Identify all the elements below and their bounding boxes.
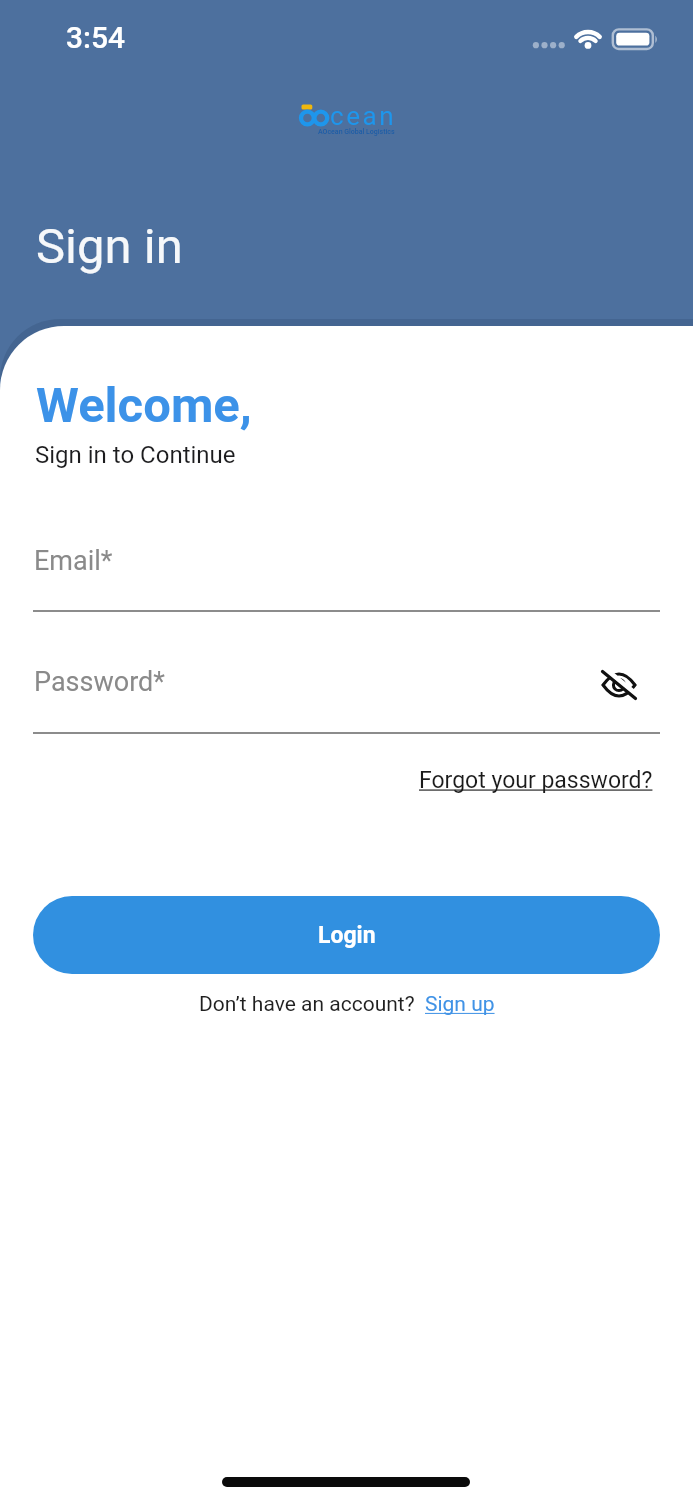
button[interactable]: Login <box>33 896 660 974</box>
staticText: Sign in to Continue <box>35 441 236 469</box>
button[interactable]: Password* <box>33 648 660 734</box>
staticText: Password* <box>34 666 165 698</box>
staticText: Sign up <box>425 992 495 1017</box>
button[interactable] <box>599 667 639 703</box>
staticText: 3:54 <box>66 20 126 55</box>
button[interactable]: Forgot your password? <box>419 767 653 794</box>
staticText: AOcean Global Logistics <box>318 128 395 136</box>
staticText: Forgot your password? <box>419 767 653 794</box>
staticText: Email* <box>34 545 113 577</box>
staticText: cean <box>330 101 397 131</box>
staticText: Login <box>318 922 376 949</box>
staticText: Sign in <box>36 218 183 275</box>
button[interactable]: Sign up <box>425 992 495 1017</box>
staticText: Welcome, <box>36 377 252 434</box>
staticText: Don’t have an account? <box>199 992 415 1017</box>
button[interactable]: Email* <box>33 526 660 612</box>
